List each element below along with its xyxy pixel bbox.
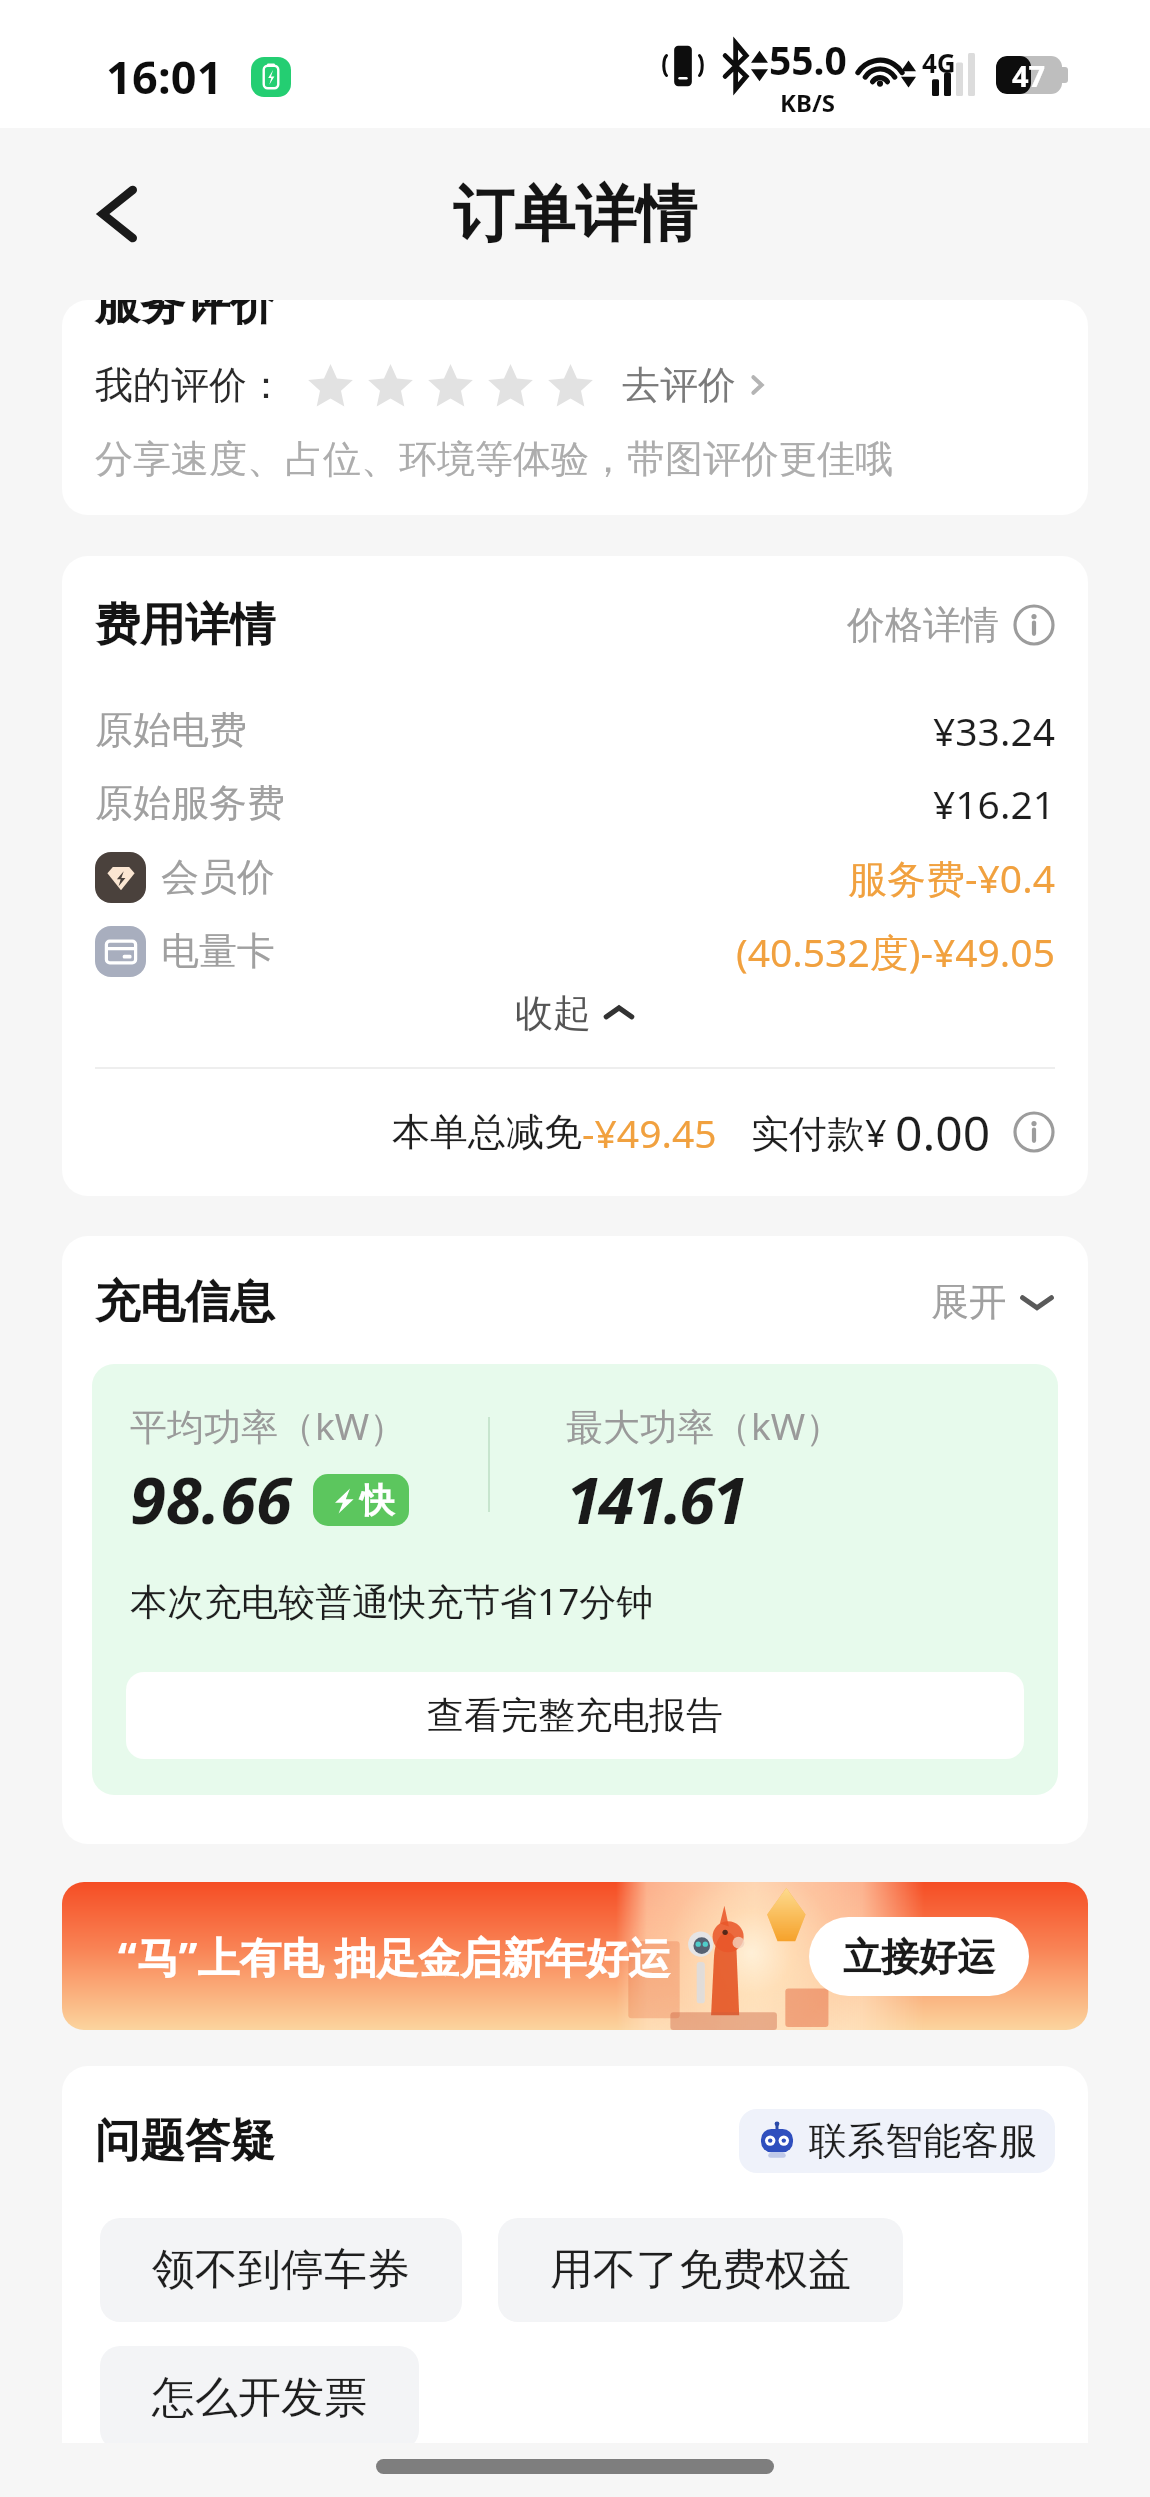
staticText: 分享速度、占位、环境等体验，带图评价更佳哦 — [95, 435, 893, 483]
button[interactable]: 查看完整充电报告 — [126, 1672, 1024, 1759]
staticText: 电量卡 — [161, 927, 275, 975]
staticText: 怎么开发票 — [152, 2371, 367, 2425]
staticText: 47 — [1012, 56, 1046, 94]
staticText: 原始电费 — [95, 706, 247, 754]
button[interactable]: 立接好运 — [809, 1917, 1029, 1996]
staticText: 55.0 — [769, 33, 847, 86]
staticText: 展开 — [931, 1278, 1007, 1326]
button[interactable]: 价格详情 — [847, 601, 1055, 649]
staticText: -¥49.45 — [582, 1106, 717, 1159]
button[interactable]: “马”上有电 抽足金启新年好运 — [62, 1882, 1088, 2030]
button[interactable]: Back — [76, 171, 162, 257]
staticText: 服务评价 — [95, 300, 275, 333]
button[interactable]: 怎么开发票 — [100, 2346, 419, 2443]
staticText: 16:01 — [106, 46, 223, 107]
button[interactable]: 联系智能客服 — [739, 2109, 1055, 2173]
staticText: 实付款¥ — [751, 1106, 887, 1158]
staticText: 价格详情 — [847, 601, 999, 649]
staticText: 用不了免费权益 — [550, 2243, 851, 2297]
staticText: 领不到停车券 — [152, 2243, 410, 2297]
staticText: 4G — [922, 45, 956, 80]
staticText: 141.61 — [566, 1455, 745, 1544]
staticText: 本单总减免 — [392, 1108, 582, 1156]
staticText: 去评价 — [622, 361, 736, 409]
staticText: 我的评价： — [95, 361, 285, 409]
staticText: 充电信息 — [95, 1274, 275, 1331]
staticText: 平均功率（kW） — [130, 1400, 407, 1451]
staticText: 本次充电较普通快充节省17分钟 — [130, 1575, 654, 1626]
staticText: (40.532度)-¥49.05 — [736, 925, 1055, 978]
staticText: 联系智能客服 — [809, 2117, 1037, 2165]
staticText: 查看完整充电报告 — [427, 1692, 723, 1739]
staticText: 收起 — [515, 989, 591, 1037]
staticText: 服务费-¥0.4 — [848, 851, 1055, 904]
button[interactable]: 用不了免费权益 — [498, 2218, 903, 2322]
staticText: 会员价 — [161, 853, 275, 901]
staticText: 原始服务费 — [95, 779, 285, 827]
button[interactable]: 展开 — [931, 1278, 1055, 1326]
staticText: 0.00 — [895, 1100, 991, 1165]
staticText: 快 — [360, 1479, 394, 1522]
staticText: “马”上有电 抽足金启新年好运 — [118, 1928, 671, 1985]
staticText: 98.66 — [130, 1455, 292, 1544]
button[interactable]: 收起 — [62, 979, 1088, 1047]
staticText: ¥16.21 — [933, 777, 1055, 830]
staticText: 立接好运 — [843, 1933, 995, 1981]
button[interactable]: 领不到停车券 — [100, 2218, 462, 2322]
staticText: 订单详情 — [453, 176, 697, 253]
staticText: 问题答疑 — [95, 2113, 275, 2170]
staticText: 最大功率（kW） — [566, 1400, 843, 1451]
button[interactable]: 去评价 — [622, 361, 770, 409]
staticText: 费用详情 — [95, 597, 275, 654]
staticText: KB/S — [780, 86, 836, 119]
staticText: ¥33.24 — [933, 704, 1055, 757]
